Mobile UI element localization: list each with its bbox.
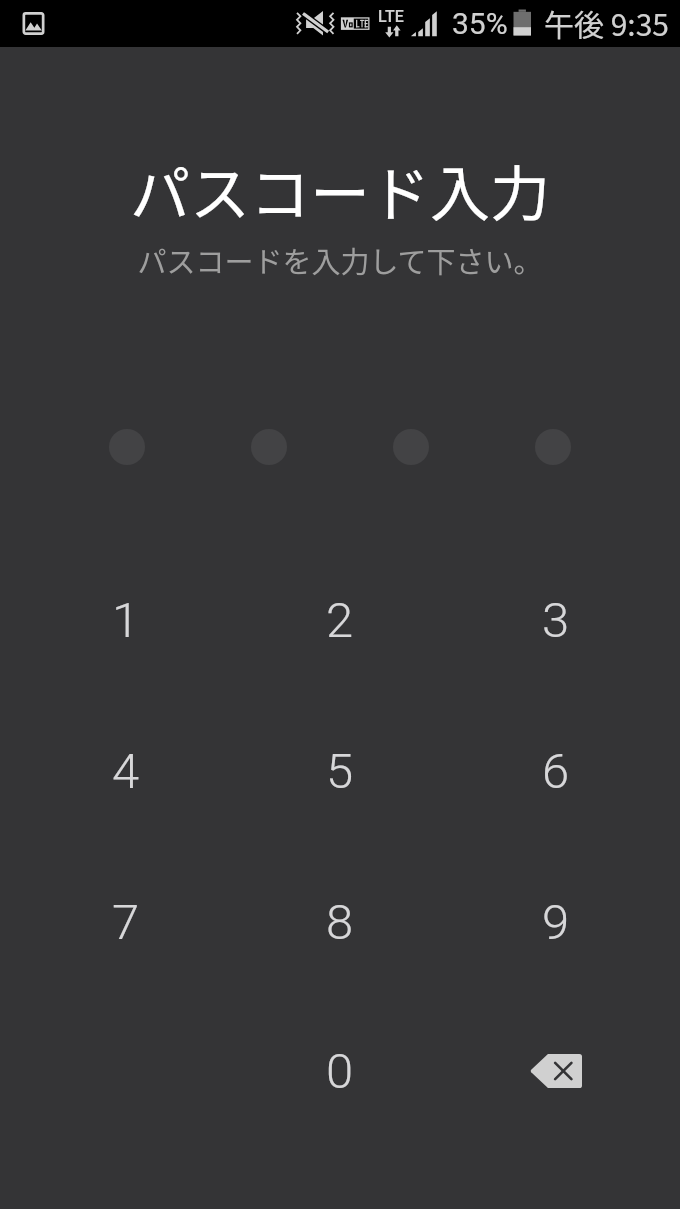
staticText: 5 (326, 743, 354, 800)
staticText: 7 (112, 894, 140, 951)
staticText: 0 (326, 1043, 354, 1100)
button[interactable]: 4 (71, 716, 181, 826)
button[interactable]: 1 (71, 565, 181, 675)
button[interactable]: Backspace (501, 1016, 611, 1126)
button[interactable]: 9 (501, 867, 611, 977)
staticText: 午後 9:35 (544, 1, 670, 44)
button[interactable]: 2 (285, 565, 395, 675)
button[interactable]: 8 (285, 867, 395, 977)
staticText: パスコードを入力して下さい。 (137, 239, 543, 281)
staticText: 2 (326, 592, 354, 649)
staticText: パスコード入力 (130, 146, 550, 233)
button[interactable]: 5 (285, 716, 395, 826)
staticText: 4 (112, 743, 140, 800)
staticText: 1 (112, 592, 140, 649)
button[interactable]: 3 (501, 565, 611, 675)
staticText: 8 (326, 894, 354, 951)
staticText: 6 (542, 743, 570, 800)
staticText: 9 (542, 894, 570, 951)
staticText: 35% (452, 6, 508, 41)
button[interactable]: 6 (501, 716, 611, 826)
staticText: 3 (542, 592, 570, 649)
button[interactable]: 7 (71, 867, 181, 977)
staticText: LTE (378, 7, 404, 26)
button[interactable]: 0 (285, 1016, 395, 1126)
